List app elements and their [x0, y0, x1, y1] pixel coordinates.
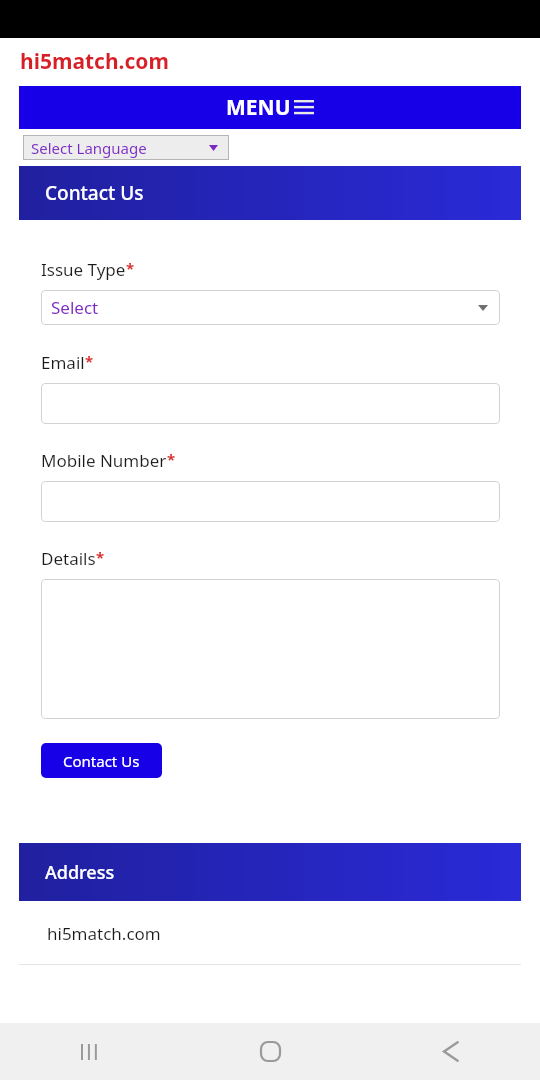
button[interactable] [41, 383, 500, 424]
staticText: * [167, 449, 176, 469]
staticText: hi5match.com [47, 922, 161, 945]
button[interactable] [41, 481, 500, 522]
staticText: Mobile Number [41, 449, 167, 472]
button[interactable] [41, 579, 500, 719]
button[interactable]: Back [360, 1023, 540, 1080]
staticText: * [85, 351, 94, 371]
button[interactable]: Select Language [23, 135, 229, 160]
staticText: Address [45, 860, 115, 885]
button[interactable]: MENU [19, 86, 521, 129]
other: Open menu [294, 100, 314, 115]
staticText: Select Language [31, 138, 147, 158]
staticText: Email [41, 351, 85, 374]
staticText: Details [41, 547, 96, 570]
button[interactable]: Recent apps [0, 1023, 180, 1080]
staticText: * [126, 258, 135, 278]
button[interactable]: Home [180, 1023, 360, 1080]
button[interactable]: Contact Us [41, 743, 162, 778]
staticText: Select [51, 296, 99, 319]
button[interactable]: Select [41, 290, 500, 325]
button[interactable]: hi5match.com [19, 901, 521, 965]
staticText: Issue Type [41, 258, 126, 281]
staticText: hi5match.com [20, 47, 169, 76]
staticText: Contact Us [63, 751, 140, 771]
staticText: MENU [226, 93, 291, 122]
staticText: * [96, 547, 105, 567]
staticText: Contact Us [45, 180, 144, 206]
